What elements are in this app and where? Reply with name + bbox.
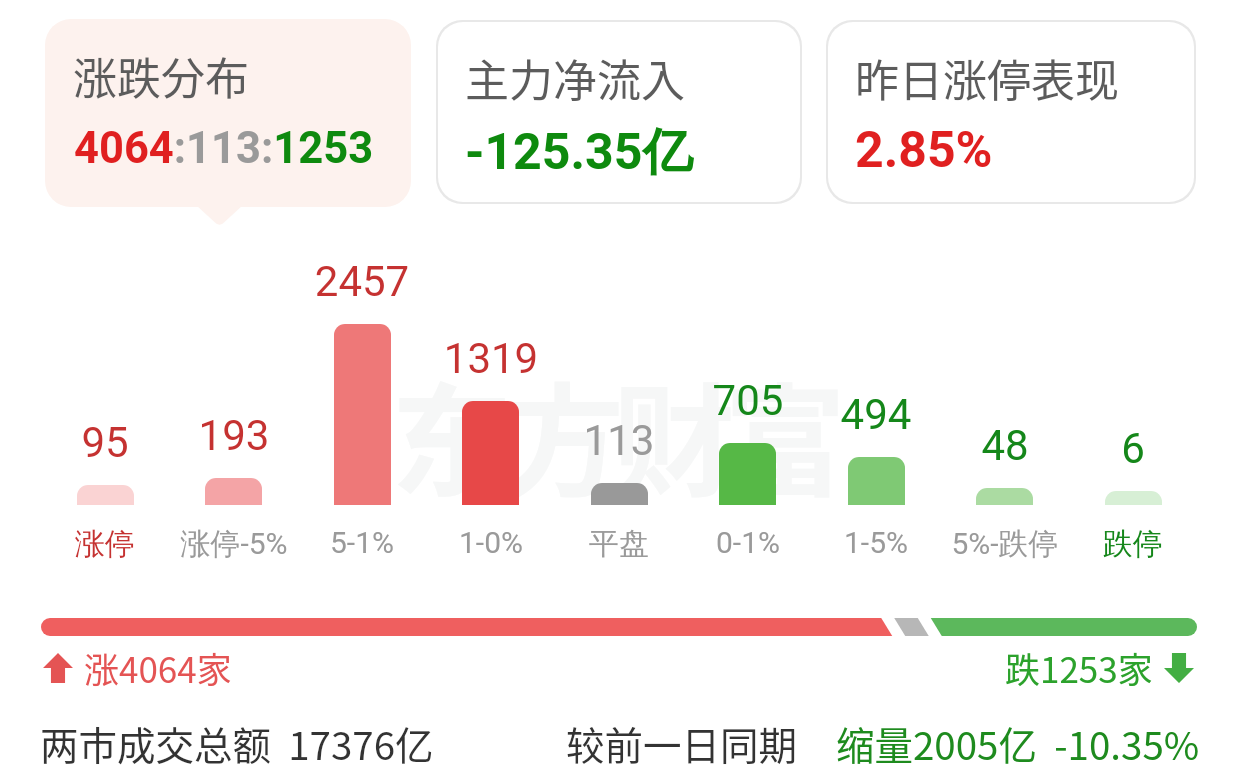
staticText: 平盘 [529, 525, 709, 563]
staticText: 5-1% [272, 525, 452, 560]
staticText: 缩量2005亿 -10.35% [836, 715, 1200, 771]
staticText: 494 [796, 390, 956, 439]
staticText: 主力净流入 [465, 46, 685, 110]
staticText: 1-5% [786, 525, 966, 560]
button[interactable]: 昨日涨停表现 [826, 20, 1196, 204]
staticText: 昨日涨停表现 [855, 46, 1119, 110]
staticText: -125.35亿 [465, 121, 693, 184]
staticText: 4064:113:1253 [74, 123, 374, 174]
staticText: 2457 [282, 257, 442, 306]
staticText: 2.85% [855, 121, 993, 180]
staticText: 95 [25, 418, 185, 467]
other: Advancing stocks [43, 653, 73, 683]
staticText: 涨4064家 [84, 642, 232, 693]
button[interactable]: 主力净流入 [436, 20, 802, 204]
staticText: 东方财富 [391, 344, 835, 521]
staticText: 48 [925, 421, 1085, 470]
staticText: 涨跌分布 [73, 44, 249, 108]
staticText: 较前一日同期 [566, 715, 798, 771]
staticText: 705 [668, 376, 828, 425]
staticText: 113 [539, 416, 699, 465]
staticText: 5%-跌停 [915, 525, 1095, 563]
staticText: 涨停 [15, 525, 195, 563]
staticText: 6 [1053, 424, 1213, 473]
other: Declining stocks [1164, 653, 1194, 683]
staticText: 跌停 [1043, 525, 1223, 563]
staticText: 涨停-5% [144, 525, 324, 563]
button[interactable]: 涨跌分布 [45, 19, 411, 207]
staticText: 193 [154, 411, 314, 460]
staticText: 0-1% [658, 525, 838, 560]
staticText: 两市成交总额 17376亿 [40, 715, 434, 771]
button[interactable]: Advancing stocks [43, 642, 232, 693]
staticText: 1319 [411, 334, 571, 383]
staticText: 跌1253家 [1005, 642, 1153, 693]
staticText: 1-0% [401, 525, 581, 560]
